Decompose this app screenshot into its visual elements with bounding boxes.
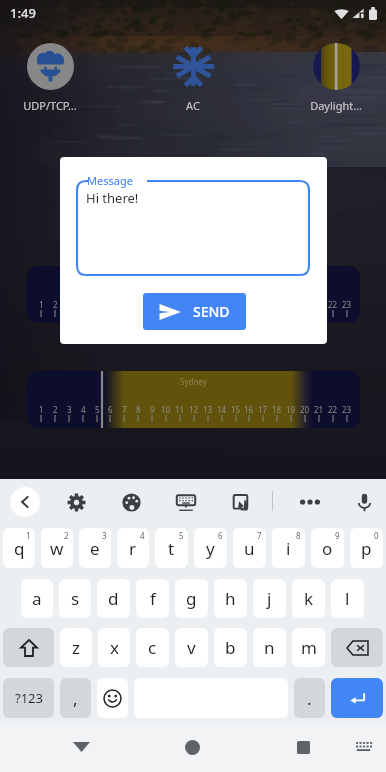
- button[interactable]: Home: [172, 727, 212, 767]
- staticText: 16: [244, 404, 254, 415]
- button[interactable]: Emoji: [97, 678, 128, 718]
- button[interactable]: r: [117, 528, 149, 568]
- button[interactable]: o: [311, 528, 344, 568]
- button[interactable]: Themes: [114, 485, 148, 519]
- button[interactable]: Daylight…: [288, 43, 384, 113]
- button[interactable]: Sydney: [27, 371, 360, 428]
- staticText: 3: [67, 404, 72, 415]
- staticText: x: [110, 636, 119, 659]
- button[interactable]: .: [294, 678, 325, 718]
- button[interactable]: i: [272, 528, 305, 568]
- button[interactable]: AC: [145, 43, 241, 113]
- staticText: n: [264, 636, 275, 659]
- staticText: l: [345, 587, 350, 610]
- staticText: 1: [26, 530, 31, 541]
- button[interactable]: Switch keyboard: [343, 727, 383, 767]
- staticText: AC: [186, 98, 200, 113]
- staticText: 11: [175, 404, 185, 415]
- button[interactable]: Sydney: [27, 266, 360, 323]
- staticText: f: [150, 587, 156, 610]
- button[interactable]: Settings: [59, 485, 93, 519]
- staticText: 22: [328, 299, 338, 310]
- staticText: SEND: [193, 302, 230, 321]
- button[interactable]: j: [253, 579, 286, 618]
- staticText: v: [187, 636, 196, 659]
- button[interactable]: Back: [61, 727, 101, 767]
- button[interactable]: k: [292, 579, 325, 618]
- button[interactable]: v: [175, 628, 208, 667]
- staticText: i: [286, 537, 291, 560]
- staticText: 4: [140, 530, 145, 541]
- staticText: 7: [122, 404, 127, 415]
- button[interactable]: t: [155, 528, 188, 568]
- staticText: c: [148, 636, 157, 659]
- button[interactable]: Shift: [3, 628, 54, 667]
- button[interactable]: n: [253, 628, 286, 667]
- button[interactable]: y: [194, 528, 227, 568]
- staticText: 9: [150, 404, 155, 415]
- button[interactable]: ,: [60, 678, 91, 718]
- staticText: 20: [300, 404, 310, 415]
- button[interactable]: a: [21, 579, 53, 618]
- staticText: 8: [136, 404, 141, 415]
- staticText: 15: [231, 404, 241, 415]
- button[interactable]: ?123: [3, 678, 54, 718]
- button[interactable]: Enter: [331, 678, 383, 718]
- staticText: Sydney: [180, 376, 207, 387]
- staticText: w: [50, 537, 64, 560]
- button[interactable]: UDP/TCP…: [2, 43, 98, 113]
- button[interactable]: x: [98, 628, 130, 667]
- staticText: 4: [81, 404, 86, 415]
- staticText: 5: [179, 530, 184, 541]
- button[interactable]: Handwriting: [224, 485, 258, 519]
- button[interactable]: w: [41, 528, 73, 568]
- button[interactable]: Voice input: [347, 485, 381, 519]
- button[interactable]: f: [136, 579, 169, 618]
- staticText: 18: [272, 404, 282, 415]
- button[interactable]: Keyboard layout: [169, 485, 203, 519]
- staticText: 9: [335, 530, 340, 541]
- staticText: 1: [39, 404, 44, 415]
- button[interactable]: s: [59, 579, 91, 618]
- button[interactable]: d: [97, 579, 130, 618]
- button[interactable]: m: [292, 628, 325, 667]
- staticText: Message: [87, 173, 133, 188]
- staticText: t: [168, 537, 175, 560]
- button[interactable]: u: [233, 528, 266, 568]
- staticText: 6: [218, 530, 223, 541]
- button[interactable]: Close keyboard: [10, 487, 40, 517]
- staticText: 23: [342, 404, 352, 415]
- staticText: 1: [39, 299, 44, 310]
- button[interactable]: z: [60, 628, 92, 667]
- button[interactable]: Recents: [283, 727, 323, 767]
- button[interactable]: p: [350, 528, 383, 568]
- button[interactable]: c: [136, 628, 169, 667]
- staticText: Daylight…: [310, 98, 362, 113]
- button[interactable]: g: [175, 579, 208, 618]
- staticText: Sydney: [180, 271, 207, 282]
- staticText: 2: [53, 299, 58, 310]
- staticText: 2: [64, 530, 69, 541]
- button[interactable]: q: [3, 528, 35, 568]
- button[interactable]: Backspace: [331, 628, 383, 667]
- staticText: 8: [296, 530, 301, 541]
- button[interactable]: l: [331, 579, 364, 618]
- button[interactable]: b: [214, 628, 247, 667]
- button[interactable]: More options: [293, 485, 327, 519]
- button[interactable]: h: [214, 579, 247, 618]
- staticText: j: [267, 587, 272, 610]
- button[interactable]: e: [79, 528, 111, 568]
- button[interactable]: SEND: [143, 293, 246, 330]
